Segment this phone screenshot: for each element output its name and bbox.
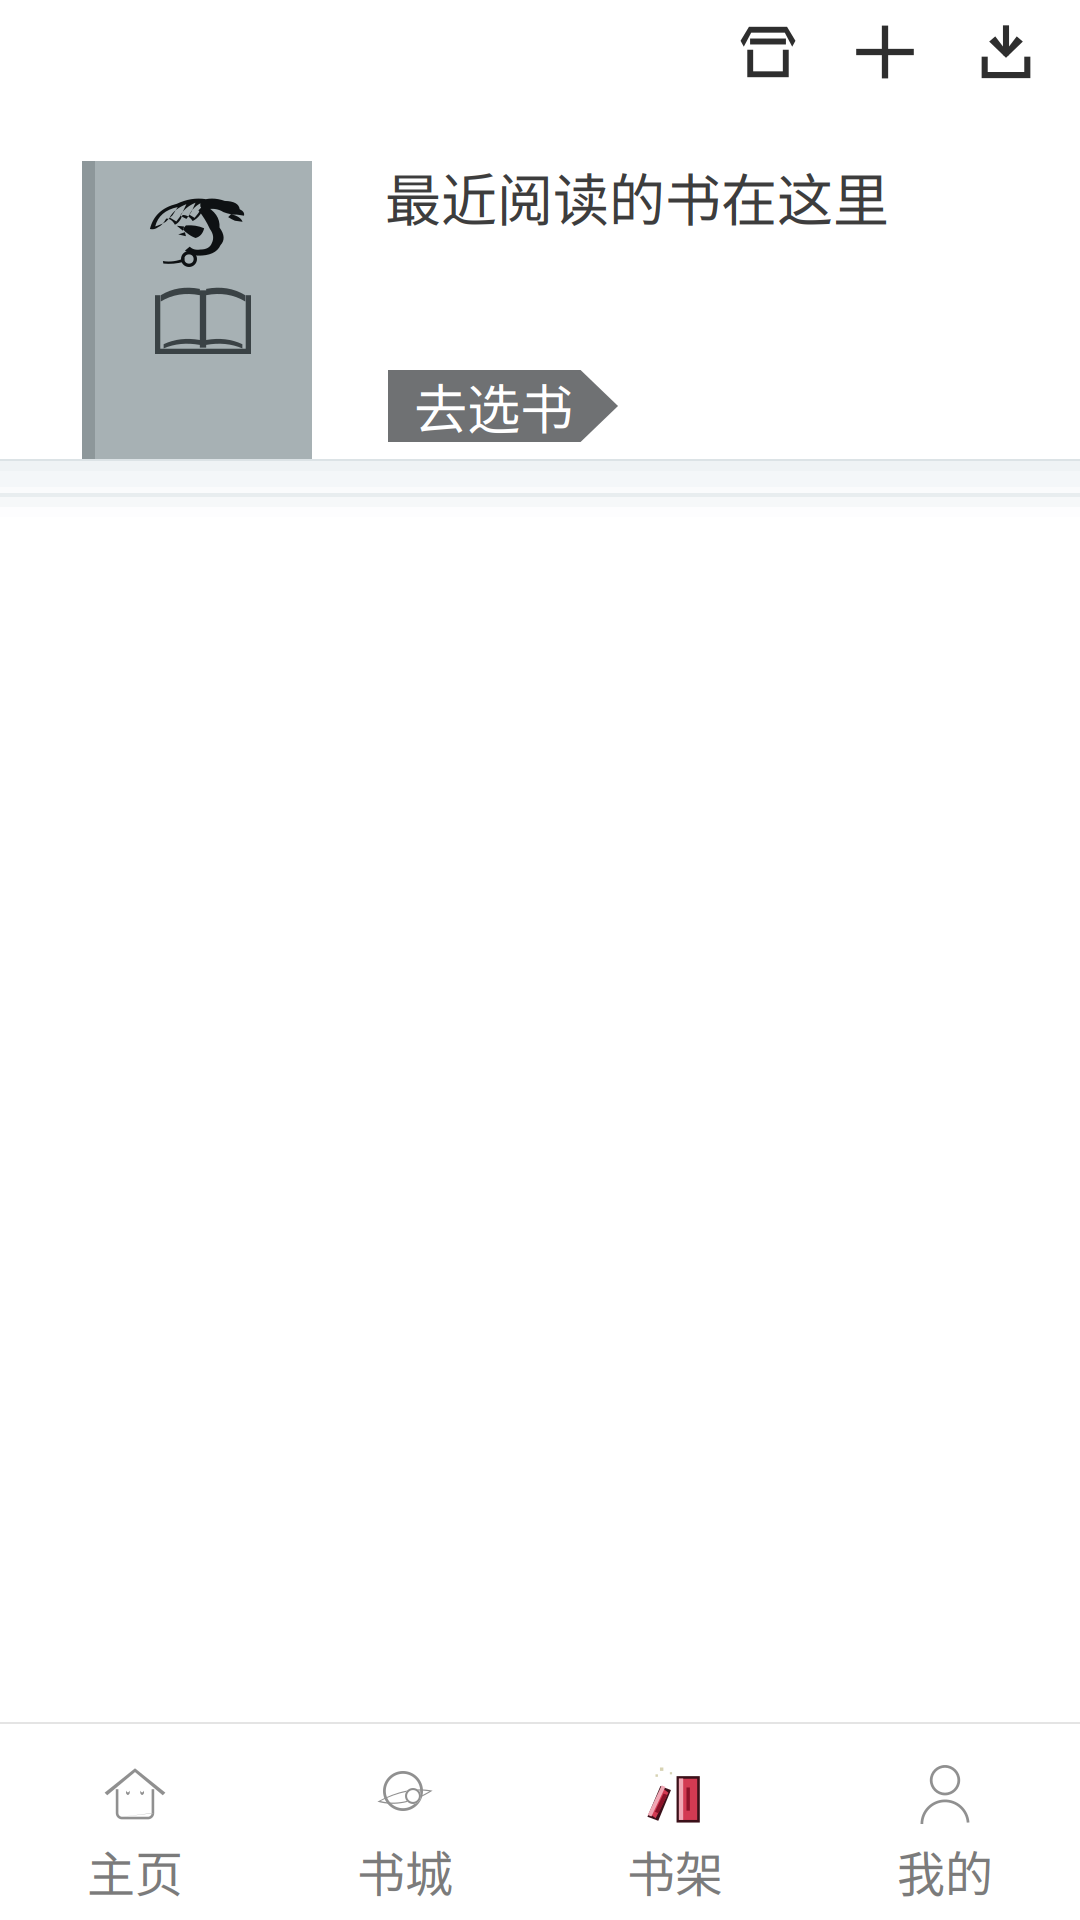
staticText: 书架 [627, 1836, 723, 1905]
button[interactable]: 书城 [270, 1724, 540, 1920]
button[interactable]: 主页 [0, 1724, 270, 1920]
staticText: 最近阅读的书在这里 [385, 155, 889, 237]
staticText: 我的 [897, 1836, 993, 1905]
button[interactable]: 我的 [810, 1724, 1080, 1920]
button[interactable]: 添加 [833, 0, 937, 104]
button[interactable]: 书架 [540, 1724, 810, 1920]
staticText: 主页 [87, 1836, 183, 1905]
button[interactable]: 去选书 [388, 370, 618, 442]
button[interactable]: 下载 [954, 0, 1058, 104]
button[interactable]: 归档 [716, 0, 820, 104]
staticText: 书城 [357, 1836, 453, 1905]
staticText: 去选书 [414, 367, 573, 445]
